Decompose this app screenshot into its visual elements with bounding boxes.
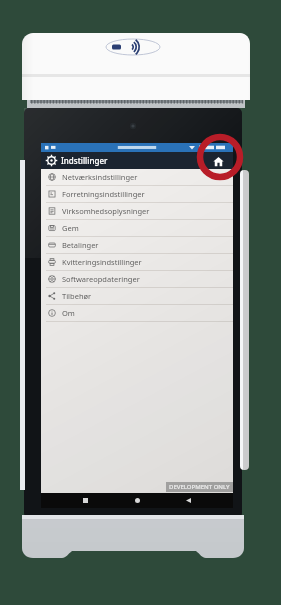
staticText: Kvitteringsindstillinger — [62, 257, 142, 267]
button[interactable]: Settings — [46, 155, 57, 166]
button[interactable]: Gem — [41, 220, 233, 237]
staticText: Virksomhedsoplysninger — [62, 206, 150, 216]
button[interactable]: Betalinger — [41, 237, 233, 254]
button[interactable]: Forretningsindstillinger — [41, 186, 233, 203]
staticText: Softwareopdateringer — [62, 274, 140, 284]
staticText: Forretningsindstillinger — [62, 189, 145, 199]
button[interactable]: Recents — [79, 494, 92, 507]
staticText: Netværksindstillinger — [62, 172, 138, 182]
button[interactable]: Kvitteringsindstillinger — [41, 254, 233, 271]
staticText: Indstillinger — [61, 155, 108, 166]
staticText: Betalinger — [62, 240, 99, 250]
button[interactable]: Om — [41, 305, 233, 322]
button[interactable]: Netværksindstillinger — [41, 169, 233, 186]
button[interactable]: Tilbehør — [41, 288, 233, 305]
staticText: Gem — [62, 223, 79, 233]
staticText: Tilbehør — [62, 291, 92, 301]
staticText: DEVELOPMENT ONLY — [169, 483, 230, 491]
button[interactable]: Softwareopdateringer — [41, 271, 233, 288]
button[interactable]: Home — [211, 154, 225, 168]
button[interactable]: Back — [182, 494, 195, 507]
staticText: Om — [62, 308, 75, 318]
button[interactable]: Virksomhedsoplysninger — [41, 203, 233, 220]
button[interactable]: Home — [131, 494, 144, 507]
